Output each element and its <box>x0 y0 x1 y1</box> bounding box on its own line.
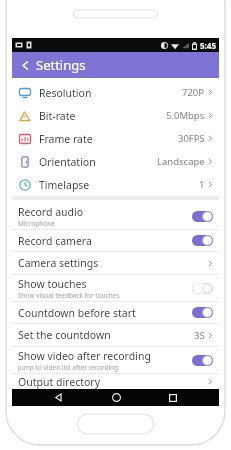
staticText: Jump to video list after recording <box>18 363 119 372</box>
button[interactable]: Frame rate <box>12 127 219 150</box>
button[interactable]: Recents <box>162 389 184 406</box>
button[interactable]: Toggle on <box>192 211 213 222</box>
staticText: Orientation <box>39 155 157 169</box>
button[interactable]: Countdown before start <box>12 302 219 323</box>
button[interactable]: Record audio <box>12 203 219 229</box>
staticText: Countdown before start <box>18 306 136 320</box>
staticText: Timelapse <box>39 178 199 192</box>
staticText: Show visual feedback for touches <box>18 291 120 300</box>
staticText: Landscape <box>157 155 205 168</box>
button[interactable]: Set the countdown <box>12 324 219 346</box>
staticText: Frame rate <box>39 132 178 146</box>
staticText: Show touches <box>18 277 87 291</box>
button[interactable]: Toggle on <box>192 355 213 366</box>
staticText: Show video after recording <box>18 349 151 363</box>
staticText: Bit-rate <box>39 109 166 123</box>
button[interactable]: Toggle off <box>192 283 213 294</box>
staticText: Microphone <box>18 219 55 228</box>
staticText: 1 <box>199 178 205 191</box>
button[interactable]: Record camera <box>12 230 219 251</box>
button[interactable]: Home <box>105 389 127 406</box>
button[interactable]: Back <box>16 56 34 74</box>
button[interactable]: Output directory <box>12 374 219 389</box>
staticText: 30FPS <box>178 132 205 145</box>
staticText: 5:45 <box>200 40 216 51</box>
staticText: 3S <box>194 329 205 342</box>
staticText: 5.0Mbps <box>166 109 205 122</box>
button[interactable]: Back <box>47 389 69 406</box>
staticText: Settings <box>36 56 86 74</box>
button[interactable]: Orientation <box>12 150 219 173</box>
staticText: Record camera <box>18 234 92 248</box>
button[interactable]: Timelapse <box>12 173 219 196</box>
staticText: Record audio <box>18 205 84 219</box>
button[interactable]: Show video after recording <box>12 347 219 373</box>
staticText: 720P <box>182 86 205 99</box>
staticText: Resolution <box>39 86 182 100</box>
staticText: Set the countdown <box>18 328 194 342</box>
staticText: Camera settings <box>18 256 207 270</box>
button[interactable]: Toggle on <box>192 307 213 318</box>
staticText: Output directory <box>18 375 207 389</box>
button[interactable]: Show touches <box>12 275 219 301</box>
button[interactable]: Resolution <box>12 81 219 104</box>
button[interactable]: Toggle on <box>192 235 213 246</box>
button[interactable]: Bit-rate <box>12 104 219 127</box>
button[interactable]: Camera settings <box>12 252 219 274</box>
